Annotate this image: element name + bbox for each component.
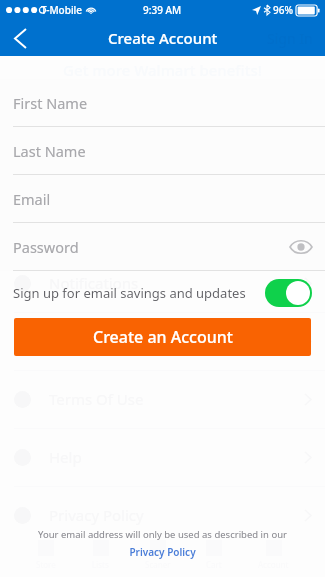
button[interactable]: Show password [287,233,315,261]
staticText: Set Your Store [49,215,149,235]
staticText: Create Account [108,28,218,48]
staticText: T-Mobile [41,3,83,17]
staticText: 9:39 AM [143,3,182,17]
staticText: Pay in-store at stores with Walmart Pay,… [24,94,301,124]
button[interactable]: Create an Account [14,318,311,356]
staticText: Notifications [49,273,139,293]
staticText: Your email address will only be used as … [0,528,325,541]
staticText: Last Name [13,141,86,161]
staticText: 96% [273,3,293,17]
button[interactable]: Email savings toggle, on [265,279,312,307]
staticText: Sign up for email savings and updates [13,284,246,302]
button[interactable]: Password [0,223,325,271]
staticText: Create an Account [93,326,233,348]
staticText: Feedback [49,331,116,351]
staticText: First Name [13,93,88,113]
button[interactable]: First Name [0,79,325,127]
button[interactable]: Sign up for email savings and updates [0,271,325,315]
staticText: Password [13,237,79,257]
staticText: Email [13,189,51,209]
button[interactable]: Privacy Policy [129,545,196,559]
button[interactable]: Email [0,175,325,223]
button[interactable]: Back [0,20,40,56]
button[interactable]: Last Name [0,127,325,175]
